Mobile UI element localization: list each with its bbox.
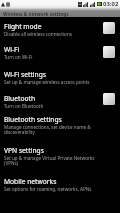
button[interactable]: VPN settings bbox=[0, 141, 120, 172]
button[interactable]: Bluetooth settings bbox=[0, 110, 120, 141]
staticText: Wireless & network settings bbox=[3, 11, 69, 17]
button[interactable]: Flight mode bbox=[0, 17, 120, 40]
button[interactable]: Bluetooth bbox=[0, 89, 120, 110]
staticText: Set up & manage Virtual Private Networks… bbox=[4, 155, 99, 166]
button[interactable]: Toggle Wi-Fi bbox=[103, 46, 115, 58]
staticText: Set options for roaming, networks, APNs bbox=[4, 186, 92, 192]
staticText: Manage connections, set device name & di… bbox=[4, 124, 99, 135]
button[interactable]: Wi-Fi bbox=[0, 40, 120, 65]
staticText: Wi-Fi settings bbox=[4, 70, 47, 79]
staticText: Turn on Wi-Fi bbox=[4, 54, 33, 60]
staticText: VPN settings bbox=[4, 146, 44, 155]
button[interactable]: Toggle Flight mode bbox=[103, 22, 115, 34]
button[interactable]: Wi-Fi settings bbox=[0, 65, 120, 89]
staticText: Wi-Fi bbox=[4, 45, 20, 54]
staticText: 03:02 bbox=[103, 0, 119, 8]
staticText: Set up & manage wireless access points bbox=[4, 79, 90, 85]
staticText: Bluetooth settings bbox=[4, 115, 62, 124]
button[interactable]: Toggle Bluetooth bbox=[103, 93, 115, 105]
staticText: Flight mode bbox=[4, 22, 42, 31]
button[interactable]: Mobile networks bbox=[0, 172, 120, 203]
staticText: Turn on Bluetooth bbox=[4, 103, 44, 109]
staticText: Bluetooth bbox=[4, 94, 36, 103]
staticText: Disable all wireless connections bbox=[4, 31, 72, 37]
staticText: Mobile networks bbox=[4, 177, 57, 186]
